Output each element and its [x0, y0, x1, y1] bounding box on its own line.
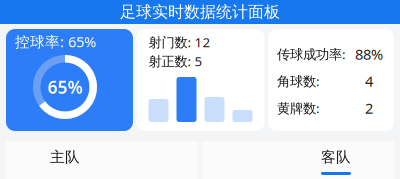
button[interactable]: 客队	[202, 141, 394, 179]
staticText: 射门数: 12	[148, 33, 210, 51]
staticText: 控球率: 65%	[15, 32, 96, 51]
staticText: 足球实时数据统计面板	[120, 2, 280, 22]
staticText: 射正数: 5	[148, 52, 202, 70]
button[interactable]: 主队	[6, 141, 198, 179]
staticText: 黄牌数:	[277, 99, 320, 117]
staticText: 客队	[321, 148, 351, 166]
staticText: 主队	[50, 148, 80, 166]
staticText: 2	[365, 98, 373, 118]
staticText: 65%	[47, 75, 82, 98]
staticText: 4	[365, 71, 373, 91]
staticText: 88%	[355, 44, 383, 64]
staticText: 传球成功率:	[277, 45, 346, 63]
staticText: 角球数:	[277, 72, 320, 90]
